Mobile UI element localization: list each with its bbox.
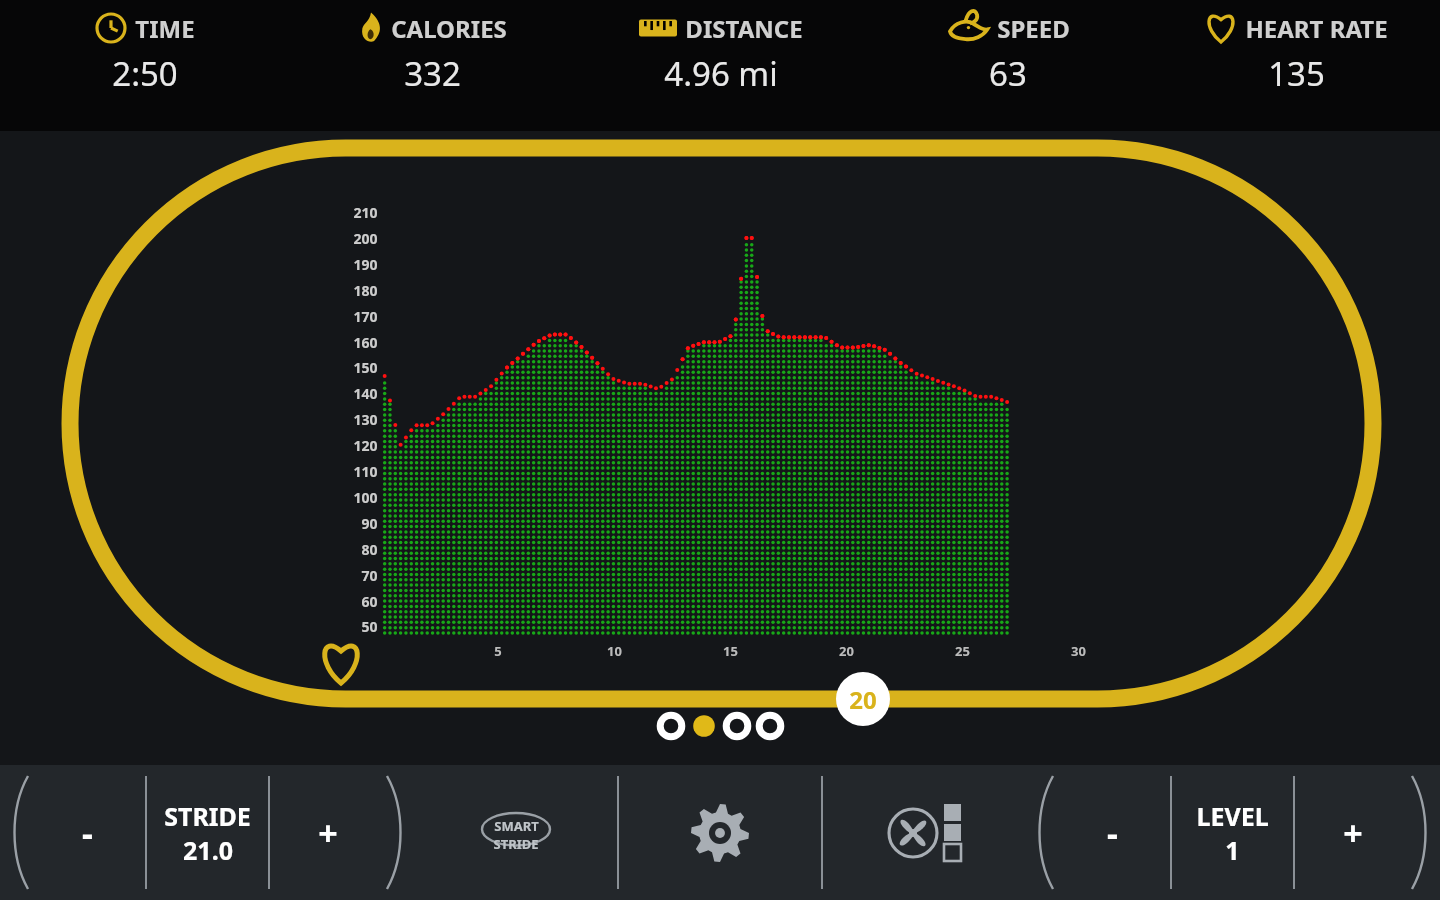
staticText: + (318, 810, 338, 856)
staticText: 200 (353, 229, 378, 248)
button[interactable]: HEART RATE (1204, 0, 1388, 131)
staticText: 80 (361, 540, 378, 559)
button[interactable] (722, 711, 752, 741)
staticText: + (1343, 810, 1363, 856)
button[interactable]: STRIDE (147, 765, 268, 900)
staticText: 20 (839, 642, 854, 660)
staticText: 63 (989, 51, 1027, 96)
staticText: 180 (353, 281, 378, 300)
button[interactable]: TIME (94, 0, 195, 131)
staticText: - (82, 810, 93, 856)
staticText: 25 (955, 642, 970, 660)
staticText: 10 (607, 642, 622, 660)
staticText: 135 (1268, 51, 1325, 96)
button[interactable]: Increase stride (270, 765, 385, 900)
staticText: 332 (404, 51, 461, 96)
staticText: 140 (353, 384, 378, 403)
button[interactable]: DISTANCE (638, 0, 803, 131)
staticText: 21.0 (183, 833, 233, 867)
button[interactable]: CALORIES (358, 0, 507, 131)
button[interactable]: Decrease stride (30, 765, 145, 900)
staticText: 1 (1225, 833, 1240, 867)
staticText: 150 (353, 358, 378, 377)
button[interactable] (755, 711, 785, 741)
button[interactable] (689, 711, 719, 741)
staticText: 60 (361, 592, 378, 611)
staticText: 170 (353, 307, 378, 326)
staticText: 30 (1071, 642, 1086, 660)
staticText: 130 (353, 410, 378, 429)
button[interactable] (656, 711, 686, 741)
staticText: - (1107, 810, 1118, 856)
staticText: SPEED (997, 12, 1070, 45)
staticText: DISTANCE (685, 12, 803, 45)
staticText: 90 (361, 514, 378, 533)
staticText: 210 (353, 203, 378, 222)
staticText: CALORIES (391, 12, 507, 45)
button[interactable]: Smart Stride (415, 765, 617, 900)
staticText: 120 (353, 436, 378, 455)
staticText: SMART (494, 817, 539, 835)
button[interactable]: Increase level (1295, 765, 1410, 900)
staticText: 110 (353, 462, 378, 481)
staticText: 70 (361, 566, 378, 585)
button[interactable]: Settings (619, 765, 821, 900)
staticText: STRIDE (493, 835, 539, 853)
staticText: 190 (353, 255, 378, 274)
staticText: TIME (135, 12, 195, 45)
button[interactable]: Decrease level (1055, 765, 1170, 900)
button[interactable]: LEVEL (1172, 765, 1293, 900)
button[interactable]: 20 (836, 672, 890, 726)
staticText: 15 (723, 642, 738, 660)
staticText: 50 (361, 617, 378, 636)
button[interactable]: Fan speed (823, 765, 1025, 900)
button[interactable]: SPEED (946, 0, 1070, 131)
staticText: 2:50 (112, 51, 178, 96)
staticText: LEVEL (1196, 799, 1269, 833)
staticText: 4.96 mi (664, 51, 778, 96)
staticText: 5 (494, 642, 502, 660)
staticText: STRIDE (164, 799, 251, 833)
staticText: HEART RATE (1245, 12, 1388, 45)
staticText: 20 (849, 683, 877, 716)
staticText: 100 (353, 488, 378, 507)
staticText: 160 (353, 333, 378, 352)
